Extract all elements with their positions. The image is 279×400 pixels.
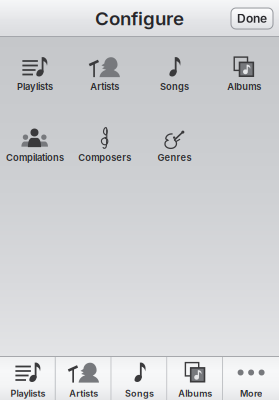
staticText: Composers xyxy=(78,152,131,163)
staticText: Albums xyxy=(178,388,212,399)
staticText: Songs xyxy=(160,81,189,92)
staticText: Playlists xyxy=(17,81,53,92)
button[interactable]: Songs xyxy=(112,356,167,400)
button[interactable]: Genres xyxy=(139,126,209,165)
button[interactable]: Playlists xyxy=(0,55,70,94)
staticText: Done xyxy=(237,11,267,26)
button[interactable]: Artists xyxy=(70,55,140,94)
staticText: More xyxy=(240,388,262,399)
button[interactable]: Albums xyxy=(167,356,223,400)
button[interactable]: More xyxy=(223,356,279,400)
staticText: Playlists xyxy=(10,388,45,399)
staticText: Compilations xyxy=(6,152,64,163)
staticText: Artists xyxy=(69,388,98,399)
staticText: Artists xyxy=(90,81,119,92)
button[interactable]: Compilations xyxy=(0,126,70,165)
staticText: Albums xyxy=(227,81,261,92)
button[interactable]: Albums xyxy=(209,55,279,94)
button[interactable]: Composers xyxy=(70,126,140,165)
button[interactable]: Playlists xyxy=(0,356,56,400)
button[interactable]: Songs xyxy=(139,55,209,94)
button[interactable]: Done xyxy=(231,8,273,29)
staticText: Songs xyxy=(125,388,154,399)
staticText: Configure xyxy=(95,7,184,30)
button[interactable]: Artists xyxy=(56,356,112,400)
staticText: Genres xyxy=(157,152,191,163)
